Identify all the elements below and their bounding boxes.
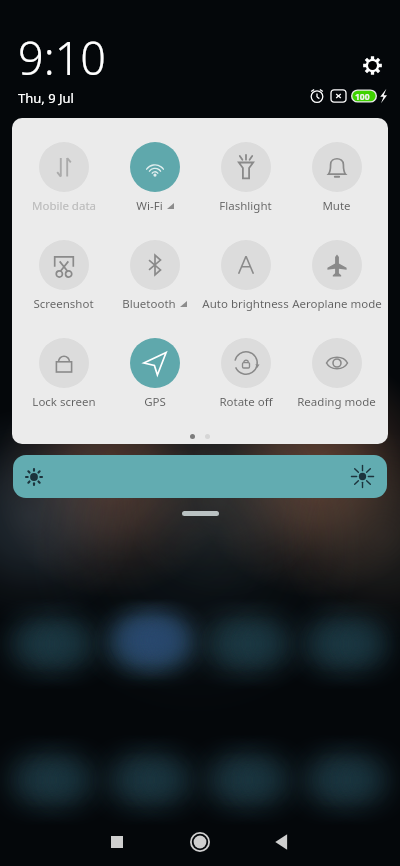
button[interactable]: Home xyxy=(178,820,222,864)
button[interactable]: Mobile data xyxy=(18,118,109,216)
button[interactable]: Brightness xyxy=(13,455,387,498)
button[interactable]: Recent apps xyxy=(97,822,137,862)
button[interactable]: Wi-Fi xyxy=(109,118,200,216)
button[interactable]: Settings xyxy=(356,49,388,81)
button[interactable]: Screenshot xyxy=(18,216,109,314)
staticText: Wi-Fi xyxy=(136,198,163,214)
staticText: Flashlight xyxy=(219,198,272,214)
staticText: Reading mode xyxy=(297,394,376,410)
staticText: Aeroplane mode xyxy=(292,296,382,312)
staticText: Lock screen xyxy=(32,394,96,410)
staticText: GPS xyxy=(144,394,166,410)
button[interactable]: Rotate off xyxy=(200,314,291,412)
staticText: Screenshot xyxy=(33,296,94,312)
staticText: Thu, 9 Jul xyxy=(18,89,74,107)
button[interactable]: Flashlight xyxy=(200,118,291,216)
button[interactable]: Aeroplane mode xyxy=(291,216,382,314)
button[interactable]: Auto brightness xyxy=(200,216,291,314)
button[interactable]: Mute xyxy=(291,118,382,216)
staticText: 9:10 xyxy=(18,27,107,88)
button[interactable]: Lock screen xyxy=(18,314,109,412)
button[interactable]: Bluetooth xyxy=(109,216,200,314)
staticText: Rotate off xyxy=(219,394,273,410)
staticText: Mute xyxy=(322,198,351,214)
button[interactable]: Reading mode xyxy=(291,314,382,412)
staticText: 100 xyxy=(355,91,370,103)
staticText: Mobile data xyxy=(32,198,96,214)
staticText: Bluetooth xyxy=(122,296,176,312)
button[interactable]: GPS xyxy=(109,314,200,412)
button[interactable]: Back xyxy=(262,822,302,862)
staticText: Auto brightness xyxy=(202,296,289,312)
